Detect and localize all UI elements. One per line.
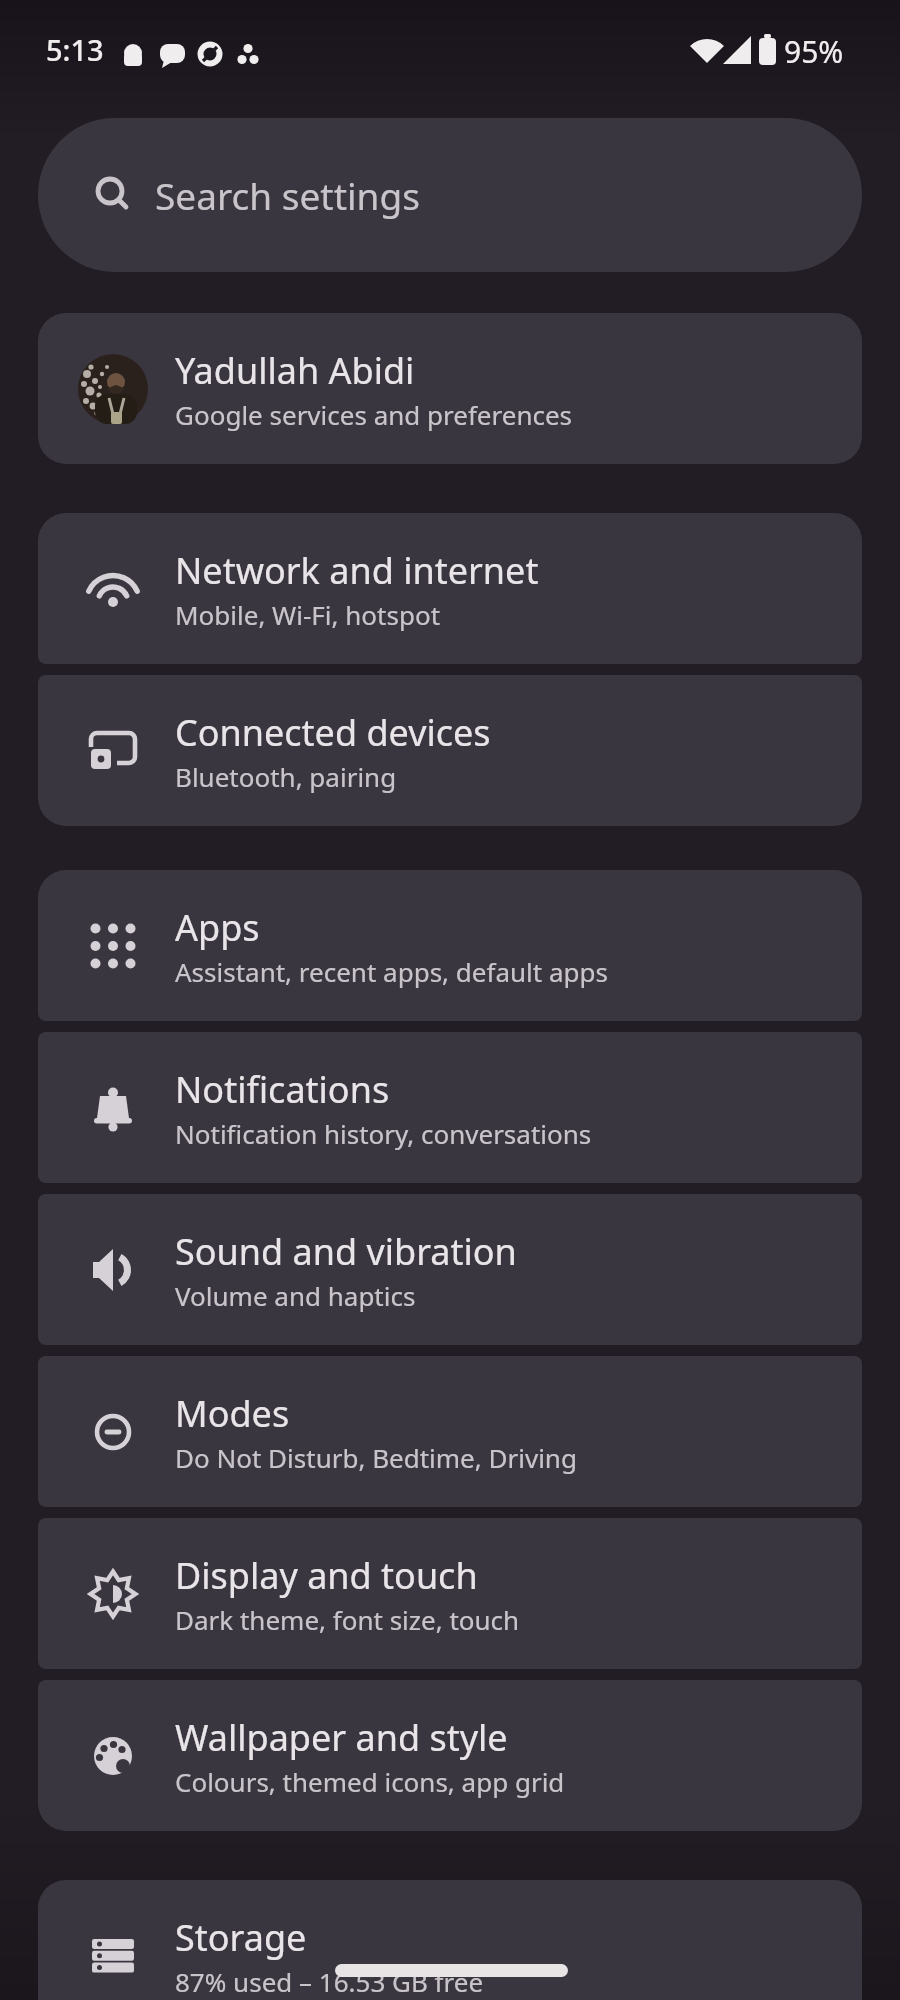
- staticText: Storage: [175, 1913, 307, 1962]
- button[interactable]: Storage: [38, 1880, 862, 2000]
- staticText: 5:13: [46, 30, 104, 69]
- staticText: 87% used – 16.53 GB free: [175, 1964, 484, 1999]
- staticText: Notification history, conversations: [175, 1116, 592, 1151]
- staticText: Google services and preferences: [175, 397, 573, 432]
- staticText: Modes: [175, 1389, 290, 1438]
- button[interactable]: Display and touch: [38, 1518, 862, 1669]
- staticText: Notifications: [175, 1065, 390, 1114]
- button[interactable]: Wallpaper and style: [38, 1680, 862, 1831]
- staticText: Do Not Disturb, Bedtime, Driving: [175, 1440, 577, 1475]
- button[interactable]: Yadullah Abidi: [38, 313, 862, 464]
- staticText: Dark theme, font size, touch: [175, 1602, 520, 1637]
- staticText: Display and touch: [175, 1551, 478, 1600]
- staticText: Volume and haptics: [175, 1278, 416, 1313]
- staticText: Mobile, Wi-Fi, hotspot: [175, 597, 441, 632]
- staticText: Yadullah Abidi: [175, 346, 415, 395]
- button[interactable]: Apps: [38, 870, 862, 1021]
- button[interactable]: Search settings: [38, 118, 862, 272]
- staticText: Sound and vibration: [175, 1227, 517, 1276]
- staticText: Colours, themed icons, app grid: [175, 1764, 565, 1799]
- button[interactable]: Modes: [38, 1356, 862, 1507]
- staticText: Assistant, recent apps, default apps: [175, 954, 608, 989]
- staticText: Search settings: [155, 170, 420, 220]
- staticText: Apps: [175, 903, 260, 952]
- staticText: Wallpaper and style: [175, 1713, 508, 1762]
- button[interactable]: Connected devices: [38, 675, 862, 826]
- staticText: Bluetooth, pairing: [175, 759, 397, 794]
- button[interactable]: Notifications: [38, 1032, 862, 1183]
- staticText: Network and internet: [175, 546, 539, 595]
- staticText: Connected devices: [175, 708, 491, 757]
- staticText: 95%: [784, 31, 844, 72]
- button[interactable]: Network and internet: [38, 513, 862, 664]
- button[interactable]: Sound and vibration: [38, 1194, 862, 1345]
